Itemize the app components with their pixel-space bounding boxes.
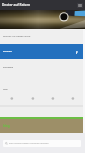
staticText: TAGS [3,88,8,91]
staticText: Zum Suchen tippen und Enter drücken [9,142,49,145]
staticText: Dexter auf Reisen [2,3,31,7]
button[interactable]: Menu [77,3,83,8]
staticText: KALENDER [3,66,13,69]
button[interactable]: Zum Suchen tippen und Enter drücken [3,140,81,147]
staticText: DEXTER AUF REISEN BLOG [3,35,31,38]
staticText: FOLGEN [3,50,12,53]
button[interactable]: FOLGEN [0,44,83,59]
staticText: f [76,50,78,54]
staticText: blog [3,124,10,128]
button[interactable]: Facebook [75,50,79,54]
